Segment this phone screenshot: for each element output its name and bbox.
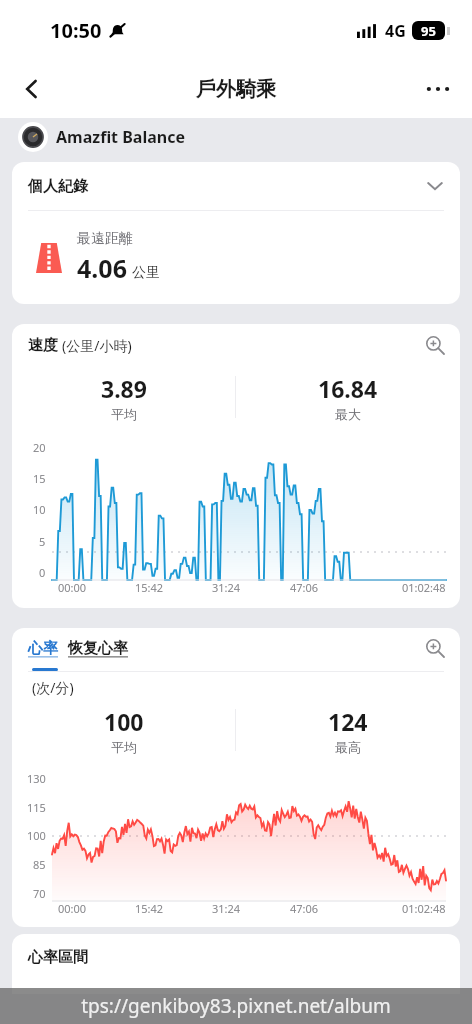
staticText: 0	[39, 565, 46, 580]
staticText: 心率	[28, 639, 58, 658]
staticText: 戶外騎乘	[196, 77, 276, 102]
staticText: 5	[39, 534, 46, 549]
staticText: 最遠距離	[77, 230, 133, 248]
staticText: (次/分)	[32, 678, 74, 697]
staticText: 115	[27, 800, 46, 815]
staticText: 10	[33, 502, 46, 517]
staticText: 個人紀錄	[28, 177, 88, 196]
staticText: 47:06	[290, 580, 319, 595]
staticText: 00:00	[58, 580, 87, 595]
staticText: Amazfit Balance	[56, 126, 185, 148]
staticText: tps://genkiboy83.pixnet.net/album	[81, 993, 391, 1019]
staticText: 20	[33, 440, 46, 455]
staticText: 130	[27, 771, 46, 786]
button[interactable]: 個人紀錄	[12, 162, 460, 210]
button[interactable]: More options	[414, 65, 462, 113]
staticText: 31:24	[212, 901, 241, 916]
button[interactable]: Zoom chart	[418, 328, 452, 362]
staticText: 心率區間	[28, 948, 88, 967]
staticText: 4G	[385, 20, 406, 42]
staticText: 31:24	[212, 580, 241, 595]
staticText: 10:50	[50, 17, 102, 44]
staticText: 16.84	[318, 373, 378, 404]
button[interactable]: Zoom chart	[418, 631, 452, 665]
staticText: 平均	[111, 739, 137, 755]
button[interactable]: 恢复心率	[68, 639, 128, 658]
staticText: 最大	[335, 406, 361, 422]
staticText: 100	[27, 828, 46, 843]
button[interactable]: 心率區間	[12, 934, 460, 994]
button[interactable]: 心率	[28, 639, 58, 658]
staticText: 47:06	[290, 901, 319, 916]
staticText: 01:02:48	[402, 580, 446, 595]
staticText: (公里/小時)	[62, 336, 132, 355]
staticText: 00:00	[58, 901, 87, 916]
staticText: 15:42	[135, 580, 164, 595]
staticText: 速度	[28, 336, 58, 355]
button[interactable]: Back	[8, 65, 56, 113]
staticText: 100	[104, 706, 144, 737]
other: Expand	[426, 177, 444, 195]
staticText: 70	[33, 886, 46, 901]
staticText: 124	[328, 706, 368, 737]
staticText: 15:42	[135, 901, 164, 916]
button[interactable]: Amazfit Balance	[18, 118, 472, 155]
staticText: 85	[33, 857, 46, 872]
staticText: 15	[33, 471, 46, 486]
staticText: 3.89	[101, 373, 147, 404]
staticText: 公里	[132, 264, 160, 282]
staticText: 恢复心率	[68, 639, 128, 658]
staticText: 01:02:48	[402, 901, 446, 916]
staticText: 95	[421, 22, 436, 40]
staticText: 4.06	[77, 251, 127, 285]
staticText: 最高	[335, 739, 361, 755]
staticText: 平均	[111, 406, 137, 422]
